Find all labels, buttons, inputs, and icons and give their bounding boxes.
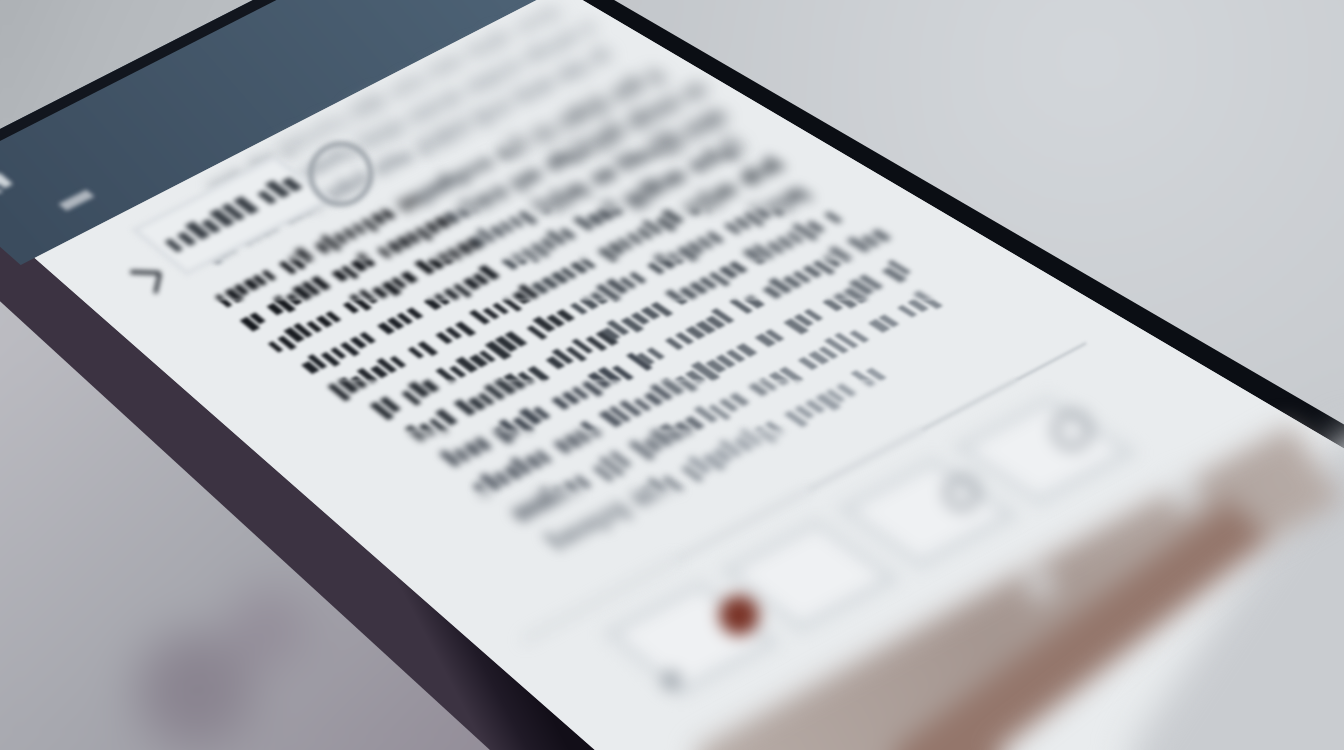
button[interactable]: Article screen <box>0 0 1344 750</box>
